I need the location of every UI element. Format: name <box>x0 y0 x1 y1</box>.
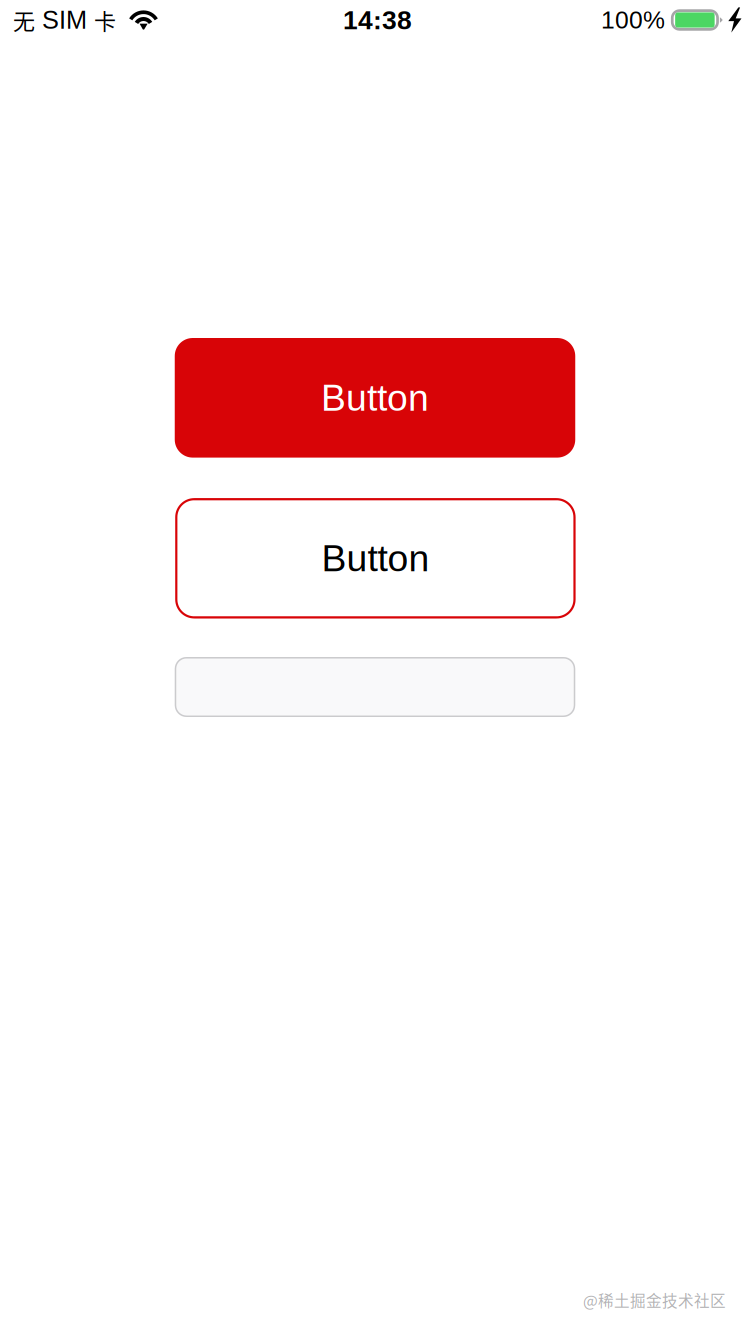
staticText: 卡 <box>94 4 116 36</box>
button[interactable]: Button <box>175 657 575 717</box>
staticText: @稀土掘金技术社区 <box>583 1289 726 1311</box>
staticText: Button <box>321 537 429 579</box>
staticText: Button <box>321 377 429 419</box>
staticText: 14:38 <box>343 5 412 35</box>
button[interactable]: Button <box>175 338 575 458</box>
staticText: 100% <box>601 6 665 34</box>
staticText: 无 <box>13 4 35 36</box>
button[interactable]: Button <box>175 498 576 618</box>
staticText: SIM <box>35 6 94 34</box>
